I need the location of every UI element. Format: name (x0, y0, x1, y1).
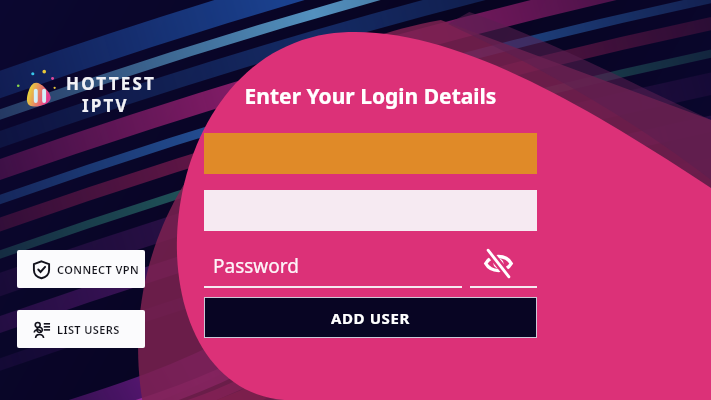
staticText: IPTV (82, 94, 129, 117)
staticText: LIST USERS (57, 322, 120, 337)
button[interactable]: LIST USERS (17, 310, 145, 348)
button[interactable]: CONNECT VPN (17, 250, 145, 288)
button[interactable]: ADD USER (204, 297, 537, 338)
button[interactable]: Show password (478, 243, 518, 283)
staticText: Password (213, 253, 299, 279)
staticText: CONNECT VPN (57, 262, 140, 277)
staticText: ADD USER (331, 308, 410, 328)
staticText: Enter Your Login Details (204, 82, 537, 111)
staticText: HOTTEST (66, 72, 156, 95)
button[interactable]: Password (204, 247, 537, 288)
